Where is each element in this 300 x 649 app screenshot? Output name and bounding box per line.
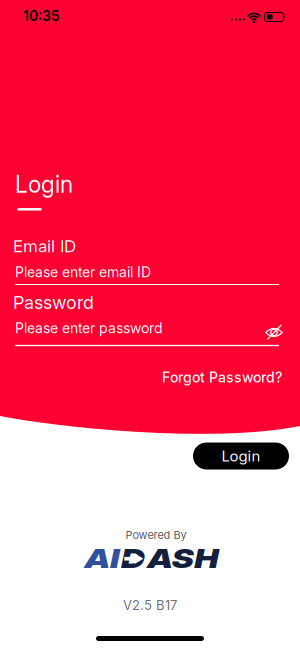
staticText: V2.5 B17 <box>123 598 177 613</box>
button[interactable]: Login <box>193 442 289 469</box>
staticText: Password <box>13 292 94 313</box>
button[interactable]: Please enter password <box>15 320 279 346</box>
staticText: D <box>127 543 146 574</box>
staticText: Email ID <box>13 236 76 256</box>
staticText: 10:35 <box>23 8 60 24</box>
staticText: Login <box>15 171 73 198</box>
button[interactable]: Show password <box>262 320 286 344</box>
staticText: Powered By <box>125 528 186 541</box>
button[interactable]: Forgot Password? <box>162 369 282 386</box>
staticText: AI <box>99 543 126 574</box>
staticText: Please enter email ID <box>15 264 151 280</box>
staticText: Please enter password <box>15 320 163 336</box>
staticText: Login <box>221 447 260 465</box>
staticText: ASH <box>148 543 204 574</box>
button[interactable]: Please enter email ID <box>15 264 279 285</box>
staticText: Forgot Password? <box>162 369 282 386</box>
